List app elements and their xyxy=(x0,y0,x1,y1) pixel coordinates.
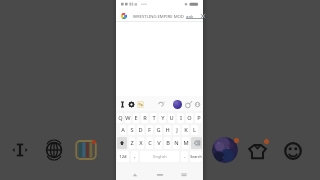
button[interactable]: G xyxy=(155,125,162,135)
staticText: J xyxy=(176,126,178,134)
button[interactable]: , xyxy=(131,151,138,162)
button[interactable]: Home xyxy=(155,170,165,180)
staticText: K xyxy=(184,126,188,134)
button[interactable]: Q xyxy=(117,113,123,123)
button[interactable]: English xyxy=(140,151,179,162)
staticText: U xyxy=(169,114,174,122)
staticText: R xyxy=(143,114,147,122)
button[interactable]: 12# xyxy=(117,151,129,162)
button[interactable]: Y xyxy=(159,113,166,123)
staticText: B xyxy=(166,139,170,147)
button[interactable]: Key xyxy=(191,137,202,149)
staticText: . xyxy=(184,153,186,160)
button[interactable]: Settings xyxy=(128,101,135,108)
button[interactable]: . xyxy=(181,151,188,162)
button[interactable]: P xyxy=(195,113,202,123)
staticText: M xyxy=(183,139,189,147)
button[interactable]: N xyxy=(173,137,180,149)
staticText: WRESTLING EMPIRE MOD xyxy=(133,13,186,19)
button[interactable]: O xyxy=(186,113,193,123)
staticText: , xyxy=(134,153,136,160)
staticText: apk xyxy=(186,13,194,19)
staticText: O xyxy=(187,114,192,122)
staticText: 12# xyxy=(119,154,127,160)
button[interactable]: Emoji xyxy=(284,142,302,160)
button[interactable]: X xyxy=(137,137,144,149)
button[interactable]: Voice input xyxy=(119,101,126,108)
button[interactable]: B xyxy=(164,137,171,149)
staticText: L xyxy=(193,126,196,134)
staticText: English xyxy=(153,154,167,159)
button[interactable]: Shirt xyxy=(248,142,267,161)
button[interactable]: D xyxy=(137,125,144,135)
button[interactable]: U xyxy=(168,113,175,123)
button[interactable]: H xyxy=(164,125,171,135)
button[interactable]: L xyxy=(191,125,198,135)
button[interactable]: Theme xyxy=(185,101,192,108)
button[interactable]: Back xyxy=(130,170,140,180)
staticText: E xyxy=(134,114,138,122)
button[interactable]: V xyxy=(155,137,162,149)
button[interactable]: Text cursor xyxy=(11,141,29,159)
button[interactable]: Search sticker xyxy=(158,101,165,108)
button[interactable]: Recents xyxy=(179,170,189,180)
button[interactable]: Key xyxy=(117,137,127,149)
button[interactable]: Search xyxy=(190,151,202,162)
staticText: X xyxy=(139,139,143,147)
staticText: W xyxy=(125,114,131,122)
staticText: Y xyxy=(161,114,165,122)
staticText: G xyxy=(156,126,161,134)
button[interactable]: W xyxy=(125,113,131,123)
button[interactable]: C xyxy=(146,137,153,149)
button[interactable]: Stickers xyxy=(137,101,144,108)
button[interactable]: R xyxy=(141,113,148,123)
staticText: H xyxy=(165,126,170,134)
staticText: Q xyxy=(118,114,123,122)
staticText: V xyxy=(157,139,161,147)
button[interactable]: A xyxy=(120,125,126,135)
staticText: Search xyxy=(190,154,202,159)
button[interactable]: F xyxy=(146,125,153,135)
staticText: C xyxy=(148,139,152,147)
staticText: S xyxy=(130,126,134,134)
button[interactable]: Z xyxy=(129,137,135,149)
button[interactable]: J xyxy=(173,125,180,135)
button[interactable]: Books xyxy=(75,139,97,161)
button[interactable]: S xyxy=(128,125,135,135)
staticText: D xyxy=(138,126,143,134)
button[interactable]: Space app xyxy=(212,137,238,163)
button[interactable]: Assistant xyxy=(173,100,182,109)
staticText: I xyxy=(180,114,182,122)
staticText: T xyxy=(152,114,156,122)
staticText: Z xyxy=(130,139,134,147)
staticText: A xyxy=(121,126,125,134)
button[interactable]: I xyxy=(177,113,184,123)
button[interactable]: E xyxy=(133,113,139,123)
button[interactable]: M xyxy=(182,137,189,149)
button[interactable]: More xyxy=(194,101,201,108)
button[interactable]: T xyxy=(150,113,157,123)
staticText: N xyxy=(174,139,179,147)
button[interactable]: K xyxy=(182,125,189,135)
staticText: F xyxy=(148,126,151,134)
staticText: P xyxy=(197,114,201,122)
button[interactable]: Browser xyxy=(45,141,63,159)
button[interactable]: WRESTLING EMPIRE MOD xyxy=(116,9,203,22)
